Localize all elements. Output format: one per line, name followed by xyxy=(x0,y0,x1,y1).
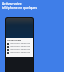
staticText: consectetur adipiscing xyxy=(10,48,30,51)
button[interactable]: consectetur adipiscing xyxy=(6,48,33,51)
staticText: Activez votre xyxy=(2,2,22,6)
staticText: consectetur adipiscing xyxy=(10,51,30,54)
staticText: consectetur adipiscing xyxy=(10,45,30,48)
button[interactable]: consectetur adipiscing xyxy=(6,51,33,54)
staticText: Lorem ipsum xyxy=(7,39,22,42)
button[interactable]: consectetur adipiscing xyxy=(6,45,33,48)
staticText: consectetur adipiscing xyxy=(10,42,30,45)
staticText: téléphone en quelques xyxy=(2,6,37,10)
button[interactable]: consectetur adipiscing xyxy=(6,42,33,45)
